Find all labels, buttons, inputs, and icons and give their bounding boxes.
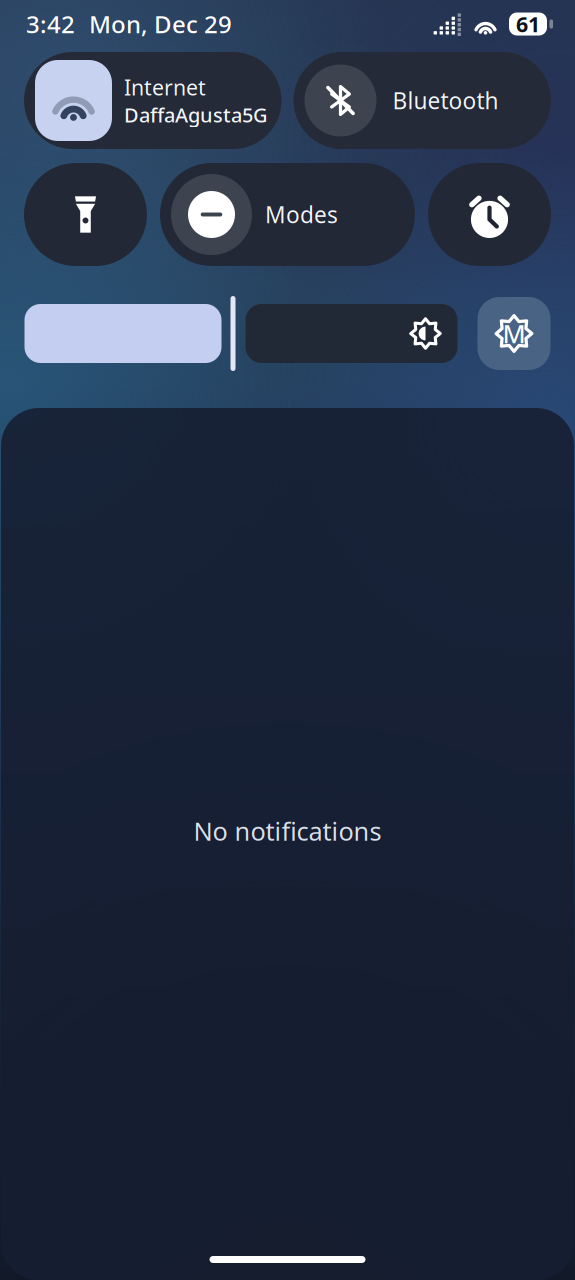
button[interactable]: Internet	[24, 52, 281, 149]
button[interactable]: Volume	[24, 304, 221, 363]
staticText: Bluetooth	[392, 85, 498, 115]
staticText: No notifications	[193, 814, 381, 848]
button[interactable]: Alarm	[428, 163, 551, 266]
staticText: Mon, Dec 29	[89, 8, 232, 40]
staticText: 3:42	[26, 8, 75, 40]
button[interactable]: Modes	[160, 163, 415, 266]
staticText: M	[502, 317, 525, 350]
staticText: Modes	[265, 199, 338, 229]
button[interactable]: Bluetooth	[293, 52, 551, 149]
staticText: Internet	[124, 73, 206, 101]
staticText: DaffaAgusta5G	[124, 101, 268, 128]
button[interactable]: Theme	[477, 297, 550, 370]
button[interactable]: Flashlight	[24, 163, 147, 266]
staticText: 61	[516, 10, 540, 38]
button[interactable]: Brightness	[245, 304, 457, 363]
